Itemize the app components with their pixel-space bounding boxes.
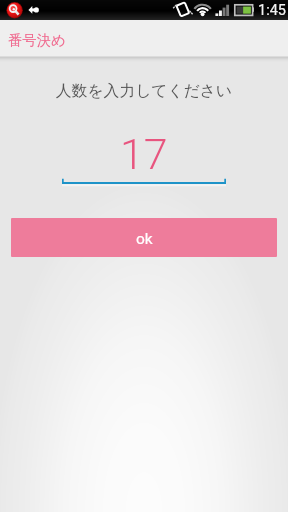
staticText: 17 [120, 129, 168, 179]
staticText: ok [136, 230, 153, 248]
staticText: 1:45 [258, 2, 286, 19]
staticText: 人数を入力してください [0, 81, 288, 101]
button[interactable]: ok [11, 218, 277, 257]
staticText: 番号決め [8, 31, 66, 49]
